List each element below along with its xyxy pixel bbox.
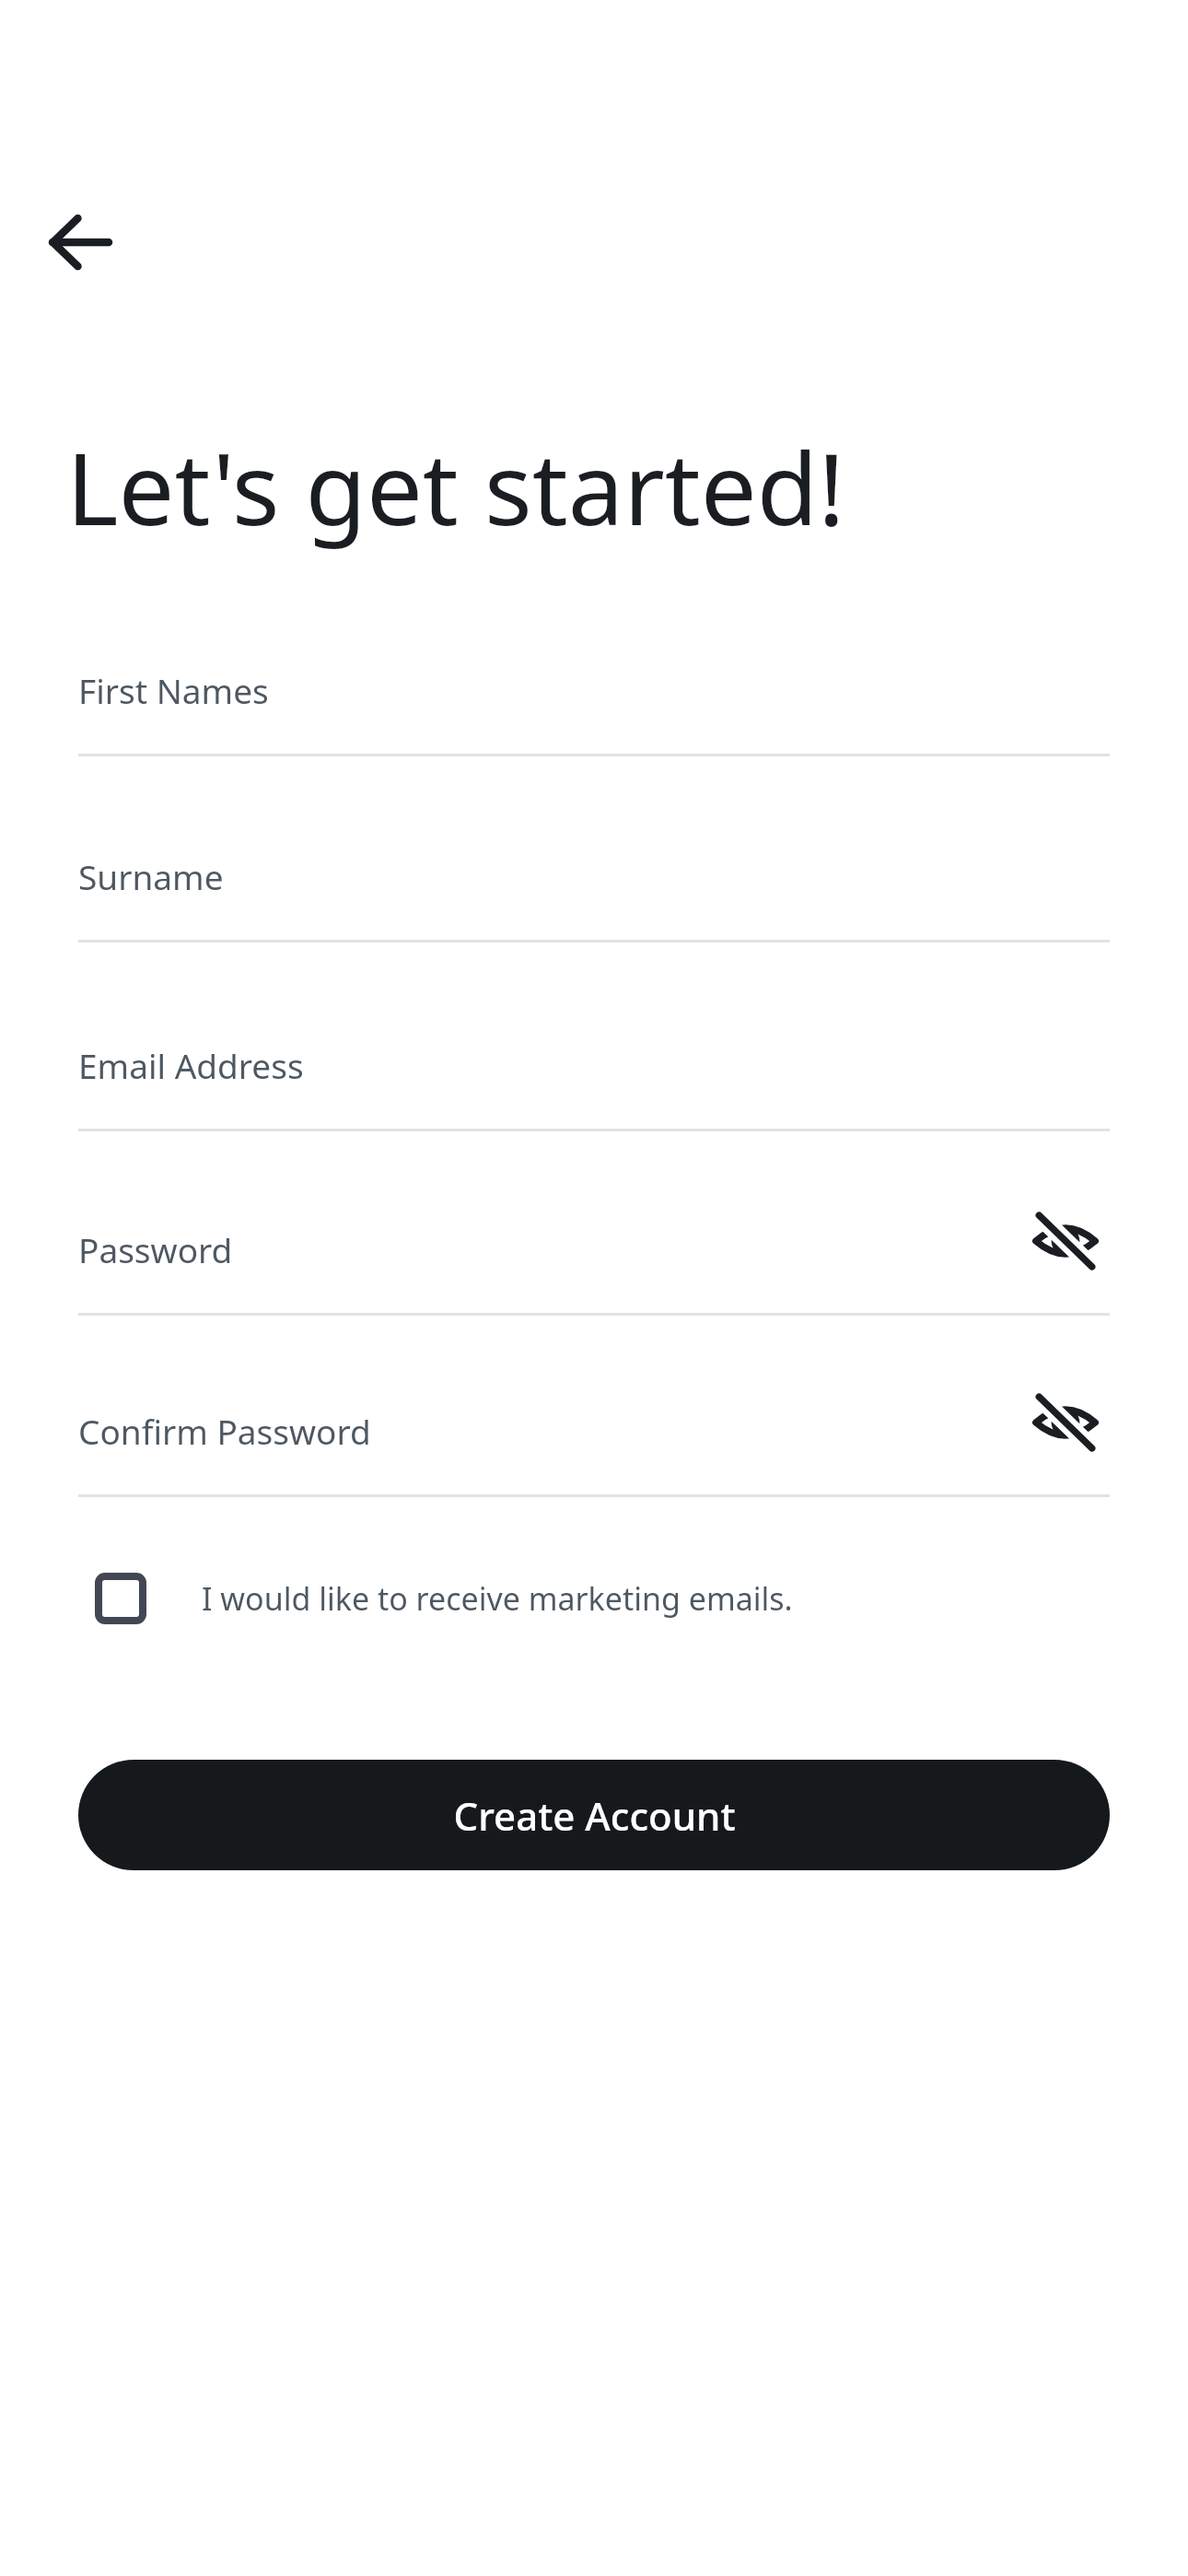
staticText: Confirm Password <box>78 1408 371 1454</box>
staticText: Surname <box>78 853 224 899</box>
button[interactable]: Password <box>78 1202 1110 1316</box>
button[interactable]: I would like to receive marketing emails… <box>78 1552 999 1645</box>
staticText: Email Address <box>78 1042 304 1088</box>
staticText: Password <box>78 1226 233 1272</box>
staticText: Let's get started! <box>66 419 845 555</box>
button[interactable]: Confirm Password <box>78 1384 1110 1497</box>
staticText: First Names <box>78 667 269 713</box>
button[interactable]: Email Address <box>78 1018 1110 1131</box>
button[interactable]: Show password <box>1021 1378 1110 1467</box>
button[interactable]: Create Account <box>78 1760 1110 1870</box>
button[interactable]: First Names <box>78 643 1110 756</box>
button[interactable]: Show password <box>1021 1197 1110 1285</box>
button[interactable]: Back <box>39 201 122 284</box>
staticText: I would like to receive marketing emails… <box>202 1577 793 1620</box>
staticText: Create Account <box>453 1789 736 1842</box>
button[interactable]: Surname <box>78 829 1110 943</box>
